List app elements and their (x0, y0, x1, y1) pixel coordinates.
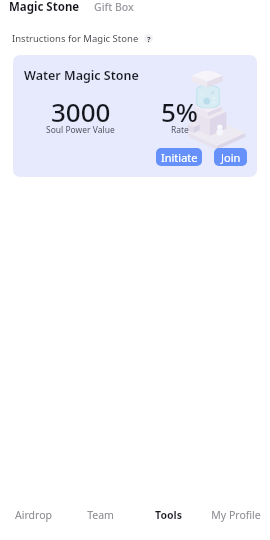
button[interactable]: Tools (134, 499, 202, 531)
staticText: Gift Box (94, 0, 134, 14)
staticText: My Profile (211, 508, 261, 522)
staticText: Tools (155, 508, 182, 522)
staticText: Join (221, 150, 241, 165)
staticText: 5% (161, 94, 199, 129)
button[interactable]: Airdrop (0, 499, 67, 531)
button[interactable]: Instructions for Magic Stone (12, 32, 153, 45)
staticText: Airdrop (15, 508, 52, 522)
button[interactable]: Join (214, 148, 247, 166)
staticText: Water Magic Stone (24, 67, 139, 84)
staticText: Team (87, 508, 114, 522)
staticText: 3000 (51, 94, 111, 129)
staticText: Rate (171, 124, 189, 136)
button[interactable]: Initiate (156, 148, 202, 166)
staticText: Soul Power Value (46, 124, 115, 136)
button[interactable]: Team (67, 499, 134, 531)
button[interactable]: My Profile (202, 499, 270, 531)
button[interactable]: Gift Box (94, 0, 134, 14)
button[interactable]: Magic Stone (9, 0, 80, 15)
staticText: Initiate (161, 150, 198, 165)
staticText: Magic Stone (9, 0, 80, 15)
other: Help (144, 34, 153, 43)
staticText: Instructions for Magic Stone (12, 32, 139, 45)
staticText: ? (147, 34, 151, 43)
